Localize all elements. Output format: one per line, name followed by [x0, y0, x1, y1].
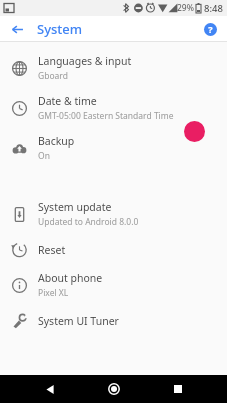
staticText: About phone — [38, 271, 103, 285]
staticText: Date & time — [38, 94, 97, 108]
staticText: Languages & input — [38, 54, 132, 68]
staticText: System UI Tuner — [38, 314, 119, 328]
staticText: System update — [38, 200, 112, 214]
staticText: Updated to Android 8.0.0 — [38, 216, 139, 228]
button[interactable]: Languages & input — [0, 48, 227, 88]
staticText: 29% — [177, 2, 194, 14]
staticText: 8:48 — [204, 2, 223, 15]
button[interactable]: System update — [0, 194, 227, 234]
button[interactable]: Recent apps — [163, 375, 193, 403]
button[interactable]: Home — [99, 375, 129, 403]
staticText: GMT-05:00 Eastern Standard Time — [38, 110, 174, 122]
staticText: Reset — [38, 243, 66, 257]
staticText: Gboard — [38, 70, 68, 82]
staticText: ? — [208, 23, 213, 35]
staticText: Pixel XL — [38, 287, 69, 299]
button[interactable]: Backup — [0, 128, 227, 168]
staticText: On — [38, 150, 50, 162]
button[interactable]: Help — [200, 19, 220, 39]
button[interactable]: System UI Tuner — [0, 305, 227, 336]
button[interactable]: Back — [35, 375, 65, 403]
button[interactable]: Date & time — [0, 88, 227, 128]
staticText: Backup — [38, 134, 75, 148]
button[interactable]: Navigate up — [6, 18, 28, 40]
button[interactable]: About phone — [0, 265, 227, 305]
button[interactable]: Reset — [0, 234, 227, 265]
staticText: System — [37, 20, 83, 38]
